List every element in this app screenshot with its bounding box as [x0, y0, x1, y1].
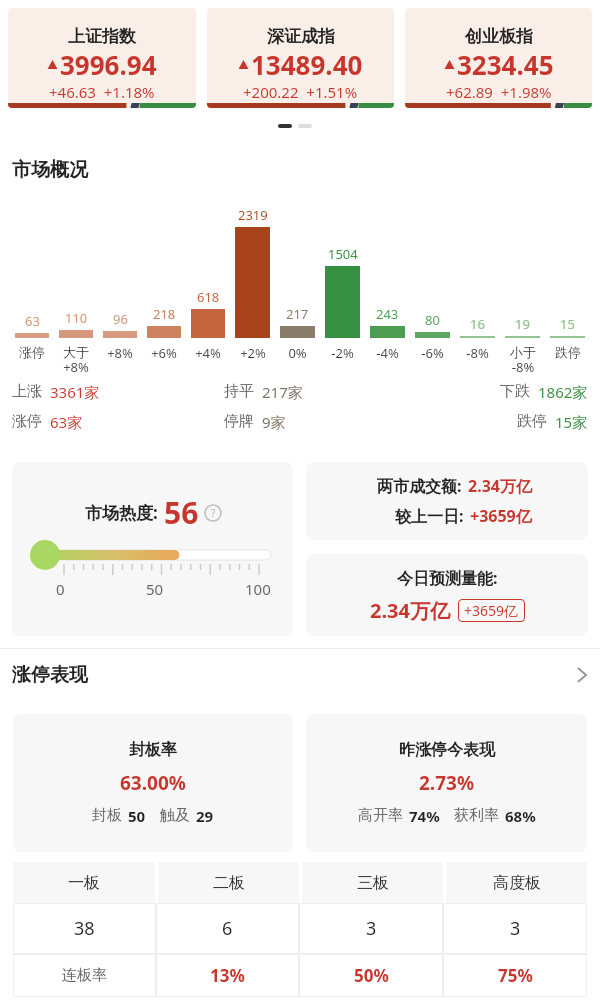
staticText: +4% — [195, 344, 221, 362]
staticText: 创业板指 — [465, 26, 533, 47]
staticText: +3659亿 — [464, 601, 519, 620]
staticText: -8% — [466, 344, 489, 362]
staticText: 2.34万亿 — [370, 597, 450, 624]
staticText: 74% — [409, 806, 440, 826]
staticText: 跌停 — [555, 344, 581, 360]
button[interactable]: 上证指数 — [8, 8, 196, 108]
button[interactable]: 二板 — [158, 862, 299, 903]
staticText: 连板率 — [62, 966, 107, 985]
staticText: 较上一日: — [395, 505, 464, 527]
staticText: -2% — [331, 344, 354, 362]
button[interactable]: 今日预测量能: — [306, 554, 588, 636]
staticText: 小于 -8% — [510, 344, 536, 376]
staticText: 3 — [366, 916, 377, 941]
button[interactable]: 高度板 — [446, 862, 587, 903]
staticText: 19 — [515, 315, 530, 333]
staticText: 三板 — [357, 873, 389, 893]
staticText: 217 — [286, 305, 309, 323]
staticText: 63.00% — [120, 770, 186, 796]
staticText: 80 — [425, 311, 440, 329]
staticText: 获利率 — [454, 806, 499, 825]
staticText: 15家 — [555, 412, 588, 432]
staticText: 50 — [128, 806, 146, 826]
staticText: 今日预测量能: — [397, 567, 498, 589]
button[interactable]: 昨涨停今表现 — [306, 714, 587, 852]
staticText: 涨停 — [12, 412, 42, 431]
staticText: -6% — [421, 344, 444, 362]
button[interactable]: 封板率 — [13, 714, 293, 852]
staticText: 13489.40 — [251, 47, 363, 82]
staticText: 16 — [470, 315, 485, 333]
staticText: 217家 — [262, 382, 303, 402]
staticText: 涨停 — [19, 344, 45, 360]
staticText: 0% — [288, 344, 307, 362]
staticText: 封板 — [92, 806, 122, 825]
button[interactable]: 一板 — [13, 862, 155, 903]
staticText: 2.34万亿 — [468, 475, 532, 497]
staticText: 9家 — [262, 412, 286, 432]
staticText: 63家 — [50, 412, 83, 432]
staticText: 618 — [197, 288, 220, 306]
staticText: 243 — [376, 305, 399, 323]
staticText: 涨停表现 — [12, 663, 88, 687]
staticText: 2.73% — [419, 770, 475, 796]
staticText: ? — [211, 506, 216, 520]
staticText: +6% — [151, 344, 177, 362]
staticText: 昨涨停今表现 — [399, 740, 495, 760]
staticText: 68% — [505, 806, 536, 826]
button[interactable]: 创业板指 — [405, 8, 592, 108]
staticText: 3 — [510, 916, 521, 941]
staticText: 高开率 — [358, 806, 403, 825]
staticText: 市场概况 — [12, 158, 88, 182]
staticText: 3996.94 — [60, 47, 157, 82]
staticText: 1862家 — [538, 382, 588, 402]
staticText: +2% — [240, 344, 266, 362]
staticText: 100 — [245, 579, 271, 599]
staticText: 高度板 — [493, 873, 541, 893]
staticText: 50 — [146, 579, 164, 599]
staticText: 38 — [74, 916, 95, 941]
staticText: 50% — [354, 964, 389, 987]
staticText: 1504 — [328, 245, 358, 263]
staticText: 0 — [56, 579, 65, 599]
staticText: 两市成交额: — [377, 475, 462, 497]
button[interactable]: 市场热度: — [12, 462, 293, 636]
staticText: 6 — [222, 916, 233, 941]
staticText: 封板率 — [129, 740, 177, 760]
staticText: 大于 +8% — [63, 344, 89, 376]
staticText: 二板 — [213, 873, 245, 893]
staticText: 2319 — [238, 206, 268, 224]
staticText: 63 — [25, 312, 40, 330]
staticText: 96 — [113, 310, 128, 328]
staticText: 75% — [498, 964, 533, 987]
staticText: 218 — [153, 305, 176, 323]
staticText: 3361家 — [50, 382, 100, 402]
button[interactable]: 两市成交额: — [306, 462, 588, 540]
staticText: +200.22 +1.51% — [243, 82, 358, 102]
staticText: +62.89 +1.98% — [446, 82, 552, 102]
staticText: 深证成指 — [267, 26, 335, 47]
staticText: -4% — [376, 344, 399, 362]
staticText: 13% — [210, 964, 245, 987]
staticText: 持平 — [224, 382, 254, 401]
staticText: +8% — [107, 344, 133, 362]
button[interactable]: 三板 — [302, 862, 443, 903]
staticText: 15 — [560, 315, 575, 333]
staticText: +46.63 +1.18% — [49, 82, 155, 102]
button[interactable]: 深证成指 — [207, 8, 394, 108]
staticText: 触及 — [160, 806, 190, 825]
staticText: 29 — [196, 806, 214, 826]
staticText: 停牌 — [224, 412, 254, 431]
staticText: 56 — [164, 492, 199, 533]
staticText: 110 — [65, 309, 88, 327]
button[interactable]: 涨停表现 — [12, 663, 588, 687]
staticText: 一板 — [68, 873, 100, 893]
staticText: 上涨 — [12, 382, 42, 401]
staticText: 上证指数 — [68, 26, 136, 47]
staticText: 下跌 — [500, 382, 530, 401]
staticText: 3234.45 — [457, 47, 554, 82]
staticText: +3659亿 — [470, 505, 532, 527]
staticText: 跌停 — [517, 412, 547, 431]
staticText: 市场热度: — [85, 501, 158, 524]
